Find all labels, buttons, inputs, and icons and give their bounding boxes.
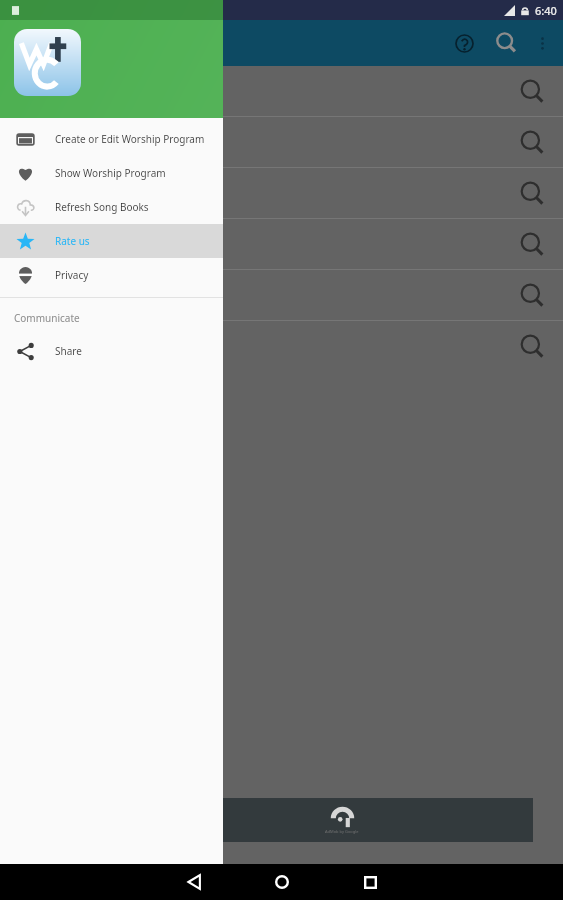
staticText: AdMob by Google (325, 829, 359, 834)
button[interactable]: Search song book (0, 219, 563, 270)
button[interactable]: You're displaying a 468 x 60 (30, 798, 533, 842)
button[interactable]: Help (443, 22, 485, 64)
button[interactable]: App logo (14, 29, 81, 96)
other: Search song book (515, 330, 549, 364)
button[interactable]: Search song book (0, 117, 563, 168)
button[interactable]: Create or Edit Worship Program (0, 122, 223, 156)
button[interactable]: Share (0, 334, 223, 368)
button[interactable]: Search song book (0, 66, 563, 117)
staticText: Refresh Song Books (55, 200, 149, 214)
staticText: Privacy (55, 268, 89, 282)
staticText: Create or Edit Worship Program (55, 132, 205, 146)
button[interactable]: Rate us (0, 224, 223, 258)
other: Search song book (515, 75, 549, 109)
staticText: Communicate (14, 311, 80, 325)
button[interactable]: Refresh Song Books (0, 190, 223, 224)
button[interactable]: Recent apps (342, 864, 398, 900)
button[interactable]: Show Worship Program (0, 156, 223, 190)
other: Search song book (515, 228, 549, 262)
staticText: Rate us (55, 234, 90, 248)
button[interactable]: Search song book (0, 270, 563, 321)
button[interactable]: Search song book (0, 168, 563, 219)
button[interactable]: Back (166, 864, 222, 900)
staticText: Show Worship Program (55, 166, 166, 180)
staticText: 6:40 (535, 3, 557, 18)
button[interactable]: Privacy (0, 258, 223, 292)
button[interactable]: Search song book (0, 321, 563, 372)
button[interactable]: More options (527, 28, 557, 58)
other: Search song book (515, 177, 549, 211)
other: Search song book (515, 126, 549, 160)
staticText: Share (55, 344, 82, 358)
button[interactable]: Search (485, 22, 527, 64)
other: Search song book (515, 279, 549, 313)
button[interactable]: Home (254, 864, 310, 900)
